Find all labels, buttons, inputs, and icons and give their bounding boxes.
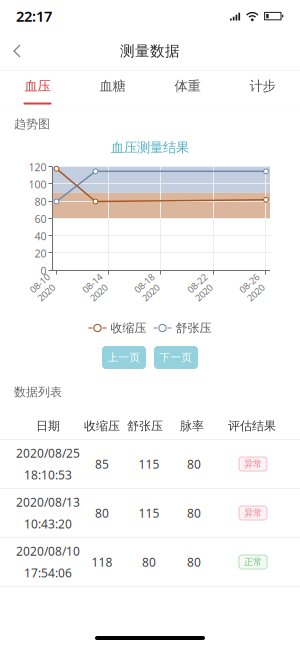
staticText: 80 — [95, 505, 109, 521]
staticText: 收缩压 — [84, 419, 120, 433]
staticText: 体重 — [174, 78, 200, 94]
staticText: 2020 — [241, 287, 261, 299]
staticText: 60 — [34, 212, 46, 226]
staticText: 80 — [187, 456, 201, 472]
staticText: 118 — [91, 554, 112, 570]
staticText: 80 — [34, 194, 46, 209]
staticText: 40 — [34, 229, 46, 243]
staticText: 血压 — [24, 78, 50, 94]
staticText: 2020/08/25 — [16, 445, 80, 461]
staticText: 评估结果 — [228, 419, 276, 433]
staticText: 上一页 — [107, 351, 140, 364]
staticText: 2020 — [84, 287, 104, 299]
staticText: 趋势图 — [14, 117, 50, 131]
staticText: 舒张压 — [175, 321, 211, 335]
button[interactable]: 计步 — [225, 71, 300, 105]
staticText: 08-26 — [241, 276, 264, 288]
button[interactable]: Back — [0, 34, 34, 68]
staticText: 80 — [187, 554, 201, 570]
staticText: 脉率 — [180, 419, 204, 433]
staticText: 测量数据 — [120, 42, 180, 60]
staticText: 08-10 — [32, 276, 55, 288]
button[interactable]: 血糖 — [75, 71, 150, 105]
staticText: 22:17 — [16, 6, 52, 26]
button[interactable]: 体重 — [150, 71, 225, 105]
staticText: 120 — [28, 160, 46, 174]
staticText: 20 — [34, 246, 46, 260]
button[interactable]: 下一页 — [154, 346, 198, 369]
staticText: 80 — [142, 554, 156, 570]
button[interactable]: 血压 — [0, 71, 75, 105]
staticText: 2020 — [189, 287, 209, 299]
staticText: 血糖 — [99, 78, 125, 94]
staticText: 计步 — [249, 78, 275, 94]
staticText: 下一页 — [159, 351, 192, 364]
button[interactable]: 上一页 — [102, 346, 146, 369]
staticText: 数据列表 — [14, 385, 62, 399]
staticText: 异常 — [244, 458, 262, 470]
staticText: 舒张压 — [127, 419, 163, 433]
staticText: 115 — [138, 456, 159, 472]
staticText: 2020 — [136, 287, 156, 299]
staticText: 2020/08/10 — [16, 543, 80, 559]
staticText: 80 — [187, 505, 201, 521]
staticText: 血压测量结果 — [111, 139, 189, 156]
staticText: 18:10:53 — [24, 467, 72, 483]
staticText: 2020 — [32, 287, 52, 299]
staticText: 10:43:20 — [24, 516, 72, 532]
staticText: 正常 — [244, 556, 262, 568]
staticText: 115 — [138, 505, 159, 521]
staticText: 收缩压 — [110, 321, 146, 335]
staticText: 0 — [40, 263, 46, 278]
staticText: 100 — [28, 177, 46, 191]
staticText: 17:54:06 — [24, 565, 72, 581]
staticText: 08-22 — [189, 276, 212, 288]
staticText: 85 — [95, 456, 109, 472]
staticText: 08-14 — [84, 276, 107, 288]
staticText: 日期 — [36, 419, 60, 433]
staticText: 08-18 — [136, 276, 159, 288]
staticText: 异常 — [244, 507, 262, 519]
staticText: 2020/08/13 — [16, 494, 80, 510]
